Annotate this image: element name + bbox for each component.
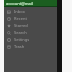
button[interactable]: Recent xyxy=(4,15,57,22)
staticText: Trash xyxy=(14,44,25,49)
staticText: Settings xyxy=(14,37,30,42)
button[interactable]: Search xyxy=(4,29,57,36)
button[interactable]: account@mail xyxy=(4,0,57,7)
staticText: Starred xyxy=(14,23,28,28)
button[interactable]: Inbox xyxy=(4,8,57,15)
button[interactable]: Settings xyxy=(4,36,57,43)
button[interactable]: Starred xyxy=(4,22,57,29)
button[interactable]: Trash xyxy=(4,43,57,50)
staticText: Inbox xyxy=(14,9,25,14)
staticText: Search xyxy=(14,30,27,35)
staticText: account@mail xyxy=(6,1,34,6)
staticText: Recent xyxy=(14,16,27,21)
